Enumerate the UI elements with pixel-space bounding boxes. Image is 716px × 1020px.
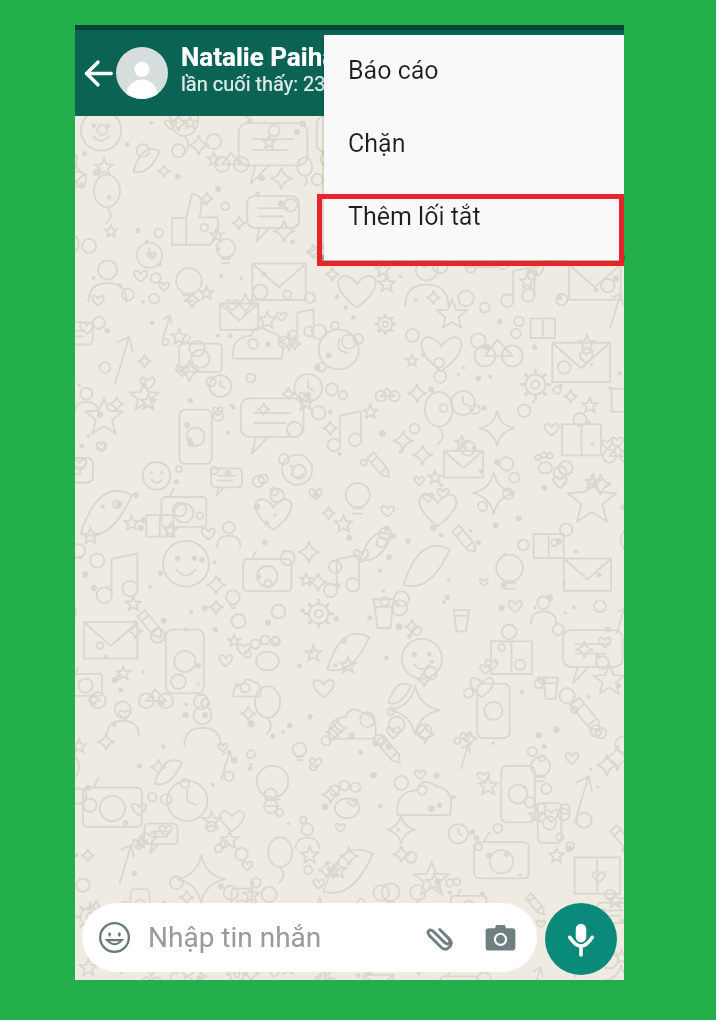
button[interactable]: Emoji [99, 922, 130, 953]
staticText: Natalie Paihama [181, 42, 373, 72]
button[interactable]: Contact photo [116, 47, 168, 99]
button[interactable]: Camera [485, 922, 516, 953]
staticText: Nhập tin nhắn [148, 921, 322, 954]
button[interactable]: Báo cáo [324, 35, 624, 108]
button[interactable]: Chặn [324, 108, 624, 181]
button[interactable]: Emoji [82, 903, 537, 972]
button[interactable]: Thêm lối tắt [324, 181, 624, 254]
staticText: Báo cáo [348, 56, 439, 85]
button[interactable]: Attach [420, 918, 460, 958]
staticText: Thêm lối tắt [348, 202, 481, 231]
button[interactable]: Back [78, 53, 119, 94]
button[interactable]: Voice message [545, 903, 617, 975]
staticText: lần cuối thấy: 23 phút trước [181, 72, 423, 95]
staticText: Chặn [348, 129, 406, 158]
